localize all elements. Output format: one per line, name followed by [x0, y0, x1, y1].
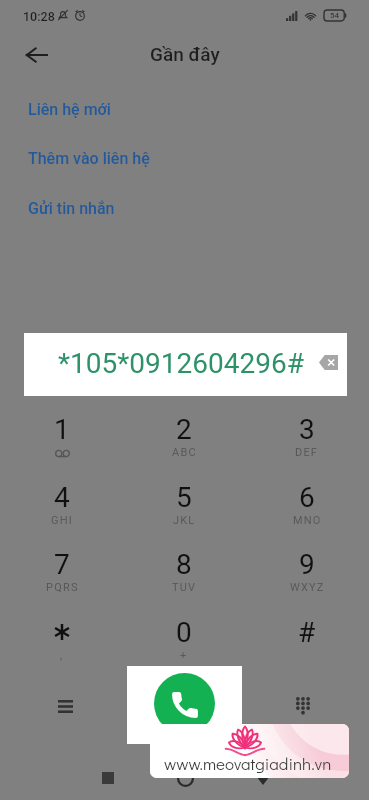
staticText: www.meovatgiadinh.vn [164, 752, 332, 774]
button[interactable]: 8 [143, 542, 225, 604]
staticText: PQRS [46, 581, 79, 594]
button[interactable]: Menu [44, 685, 86, 727]
staticText: 7 [54, 548, 70, 581]
staticText: 1 [54, 413, 70, 446]
staticText: 5 [176, 481, 192, 514]
staticText: ABC [172, 446, 197, 459]
staticText: Gần đây [150, 43, 220, 65]
staticText: 54 [330, 11, 340, 20]
button[interactable]: 9 [266, 542, 348, 604]
staticText: 8 [176, 548, 192, 581]
staticText: DEF [295, 446, 319, 459]
button[interactable]: # [266, 610, 348, 672]
staticText: *105*0912604296# [58, 347, 304, 380]
button[interactable]: 6 [266, 475, 348, 537]
staticText: WXYZ [290, 581, 325, 594]
staticText: 2 [176, 413, 192, 446]
staticText: 4 [54, 481, 70, 514]
staticText: JKL [173, 514, 196, 527]
button[interactable]: * [21, 610, 103, 672]
staticText: 6 [299, 481, 315, 514]
button[interactable]: Recents [93, 763, 123, 793]
button[interactable]: Thêm vào liên hệ [0, 140, 369, 176]
button[interactable]: Back [248, 763, 278, 793]
button[interactable]: 3 [266, 407, 348, 469]
button[interactable]: 5 [143, 475, 225, 537]
button[interactable]: Backspace [308, 344, 348, 380]
staticText: 0 [176, 616, 192, 649]
button[interactable]: Dialpad [282, 684, 324, 726]
staticText: MNO [293, 514, 322, 527]
button[interactable]: Back [16, 35, 56, 75]
staticText: TUV [172, 581, 197, 594]
staticText: Thêm vào liên hệ [28, 149, 150, 168]
button[interactable]: 7 [21, 542, 103, 604]
staticText: # [298, 616, 316, 649]
staticText: 10:28 [23, 9, 55, 24]
button[interactable]: 2 [143, 407, 225, 469]
button[interactable]: 1 [21, 407, 103, 469]
staticText: + [180, 649, 188, 662]
staticText: 9 [299, 548, 315, 581]
button[interactable]: 4 [21, 475, 103, 537]
button[interactable]: 0 [143, 610, 225, 672]
staticText: , [60, 649, 64, 662]
button[interactable]: Call [154, 673, 215, 734]
staticText: Gửi tin nhắn [28, 199, 115, 218]
button[interactable]: Home [170, 763, 200, 793]
staticText: Liên hệ mới [28, 100, 111, 119]
staticText: 3 [299, 413, 315, 446]
button[interactable]: Liên hệ mới [0, 91, 369, 127]
staticText: GHI [51, 514, 73, 527]
button[interactable]: Gửi tin nhắn [0, 190, 369, 226]
